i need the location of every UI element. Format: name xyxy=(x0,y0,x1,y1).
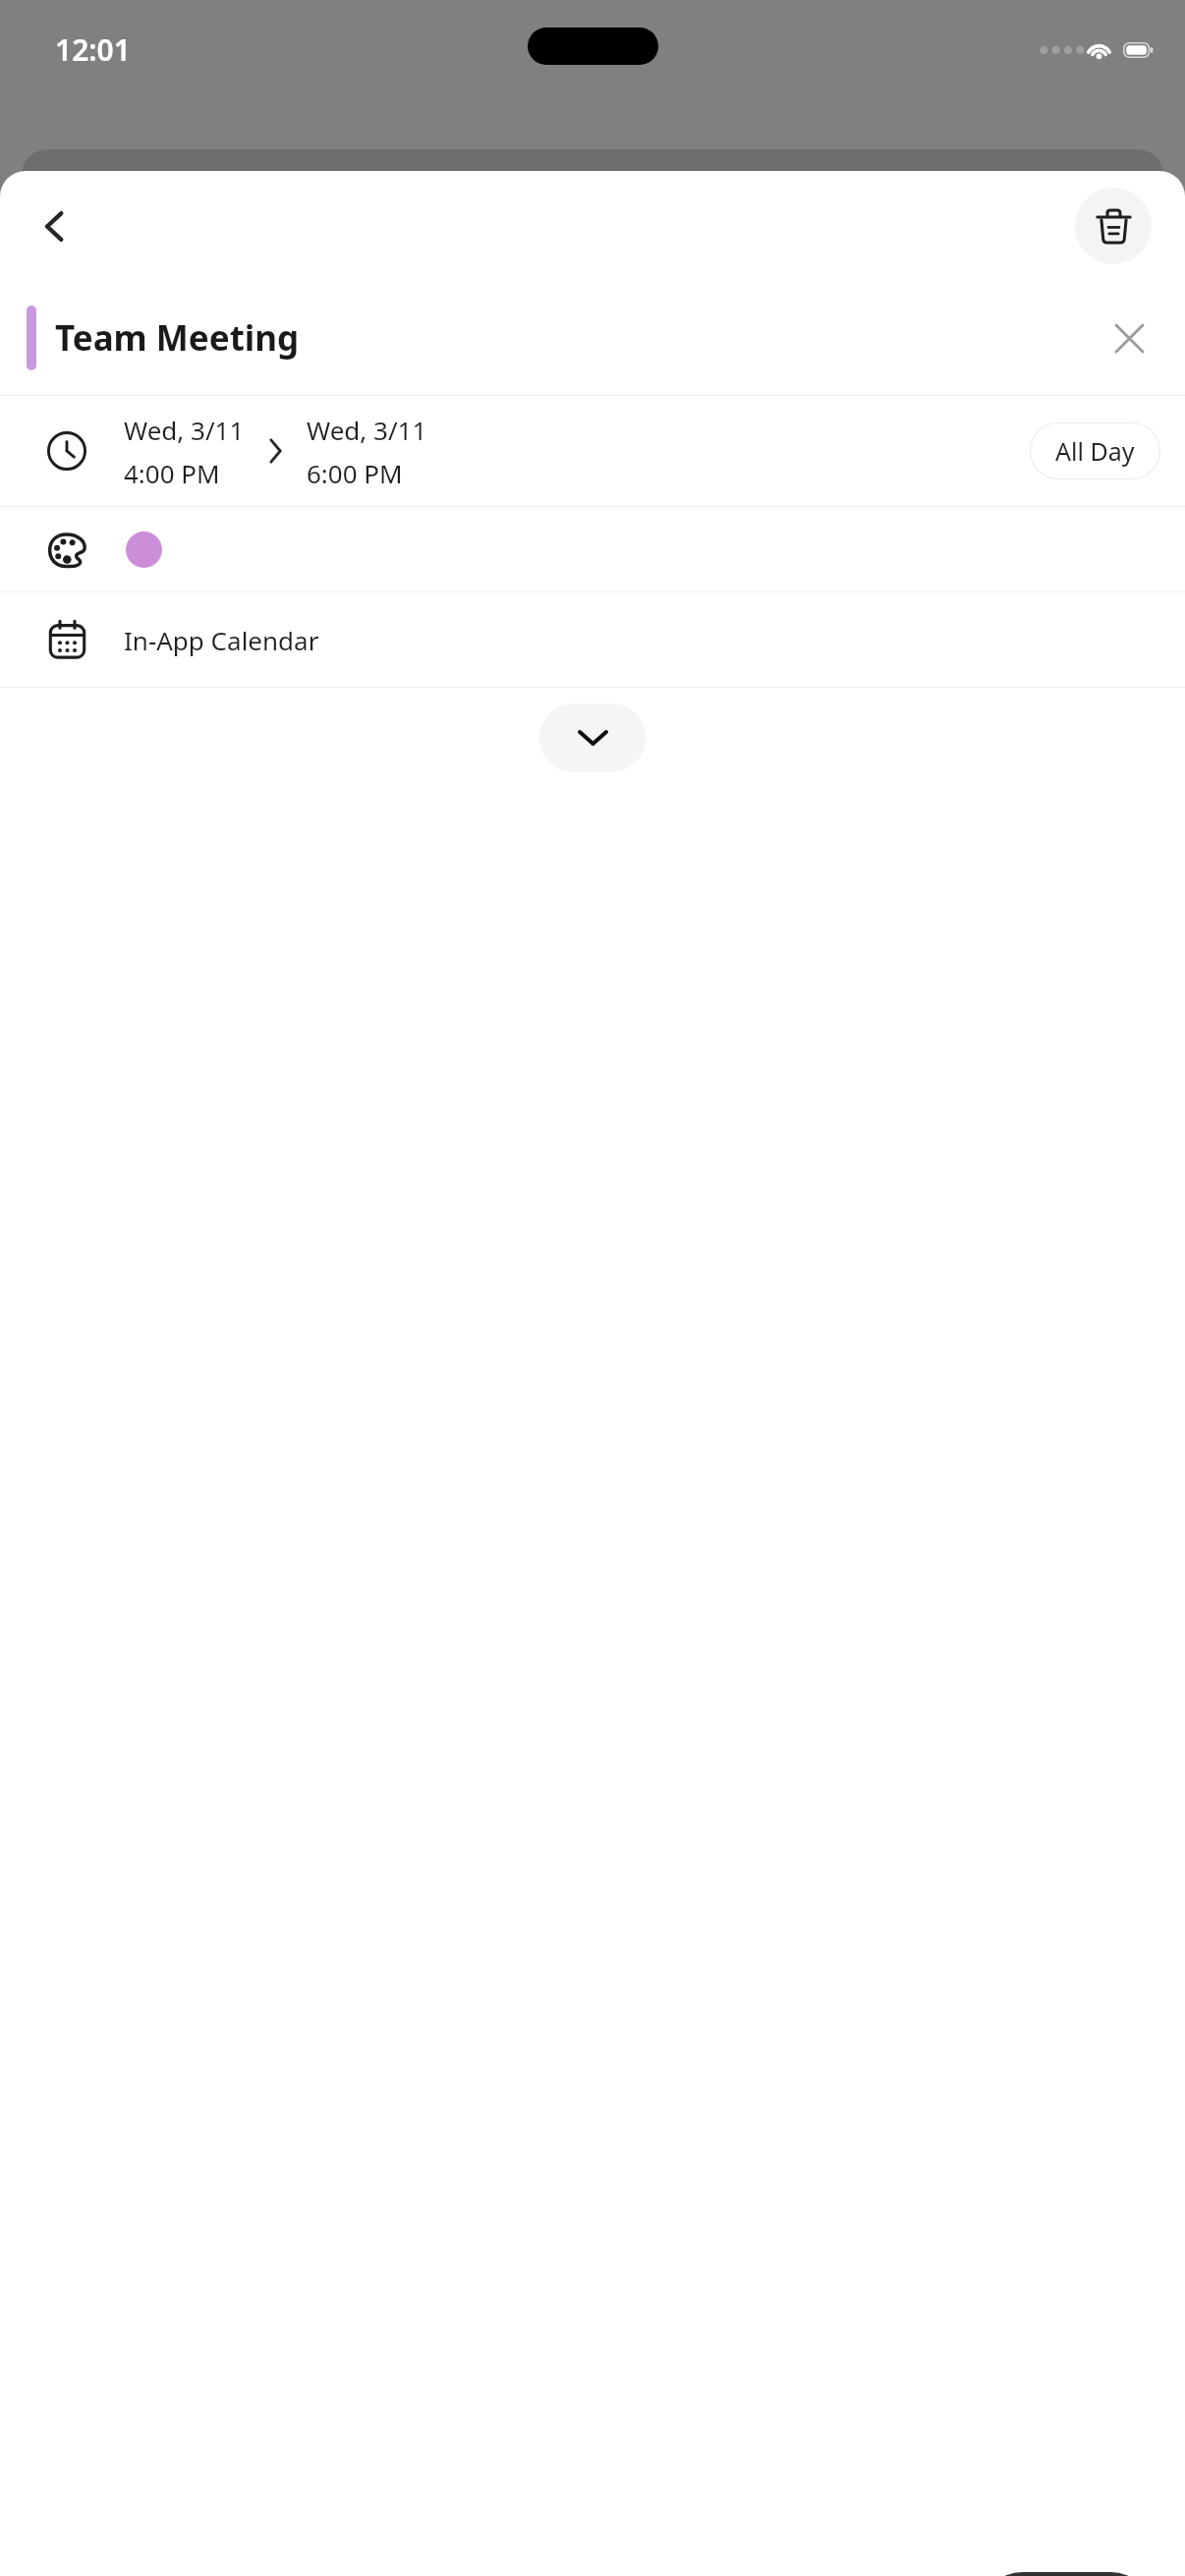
staticText: Team Meeting xyxy=(55,314,300,362)
staticText: Wed, 3/11 xyxy=(124,413,245,447)
button[interactable]: Event colour xyxy=(126,532,162,568)
button[interactable]: Wed, 3/11 xyxy=(0,396,1185,506)
staticText: 12:01 xyxy=(55,29,131,70)
staticText: 4:00 PM xyxy=(124,456,220,490)
button[interactable]: Team Meeting xyxy=(0,281,1185,395)
staticText: In-App Calendar xyxy=(124,623,319,657)
button[interactable]: Delete xyxy=(1075,188,1152,264)
button[interactable]: Save xyxy=(980,2572,1154,2576)
button[interactable]: Event colour xyxy=(0,507,1185,591)
staticText: All Day xyxy=(1055,434,1135,468)
staticText: Wed, 3/11 xyxy=(307,413,427,447)
button[interactable]: Back xyxy=(22,194,86,258)
button[interactable]: Close xyxy=(1097,306,1161,370)
button[interactable]: All Day xyxy=(1030,422,1160,479)
button[interactable]: In-App Calendar xyxy=(0,592,1185,687)
staticText: 6:00 PM xyxy=(307,456,403,490)
button[interactable]: Show more xyxy=(539,703,646,772)
